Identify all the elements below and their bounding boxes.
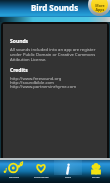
staticText: SOUNDS: [9, 175, 20, 178]
staticText: FAVOURITES: [34, 175, 49, 178]
staticText: SHARE: [92, 175, 100, 178]
staticText: All sounds included into an app are regi…: [10, 47, 102, 62]
button[interactable]: SHARE: [82, 160, 110, 175]
staticText: Credits: [10, 67, 28, 74]
button[interactable]: More Apps: [88, 0, 110, 16]
button[interactable]: SOUNDS: [0, 160, 27, 175]
button[interactable]: INFO: [54, 160, 82, 175]
staticText: INFO: [65, 175, 72, 178]
staticText: More Apps: [95, 3, 105, 12]
button[interactable]: FAVOURITES: [27, 160, 54, 175]
staticText: Bird Sounds: [31, 2, 79, 13]
staticText: Sounds: [10, 38, 29, 45]
staticText: http://www.freesound.org http://soundbib…: [10, 76, 77, 90]
